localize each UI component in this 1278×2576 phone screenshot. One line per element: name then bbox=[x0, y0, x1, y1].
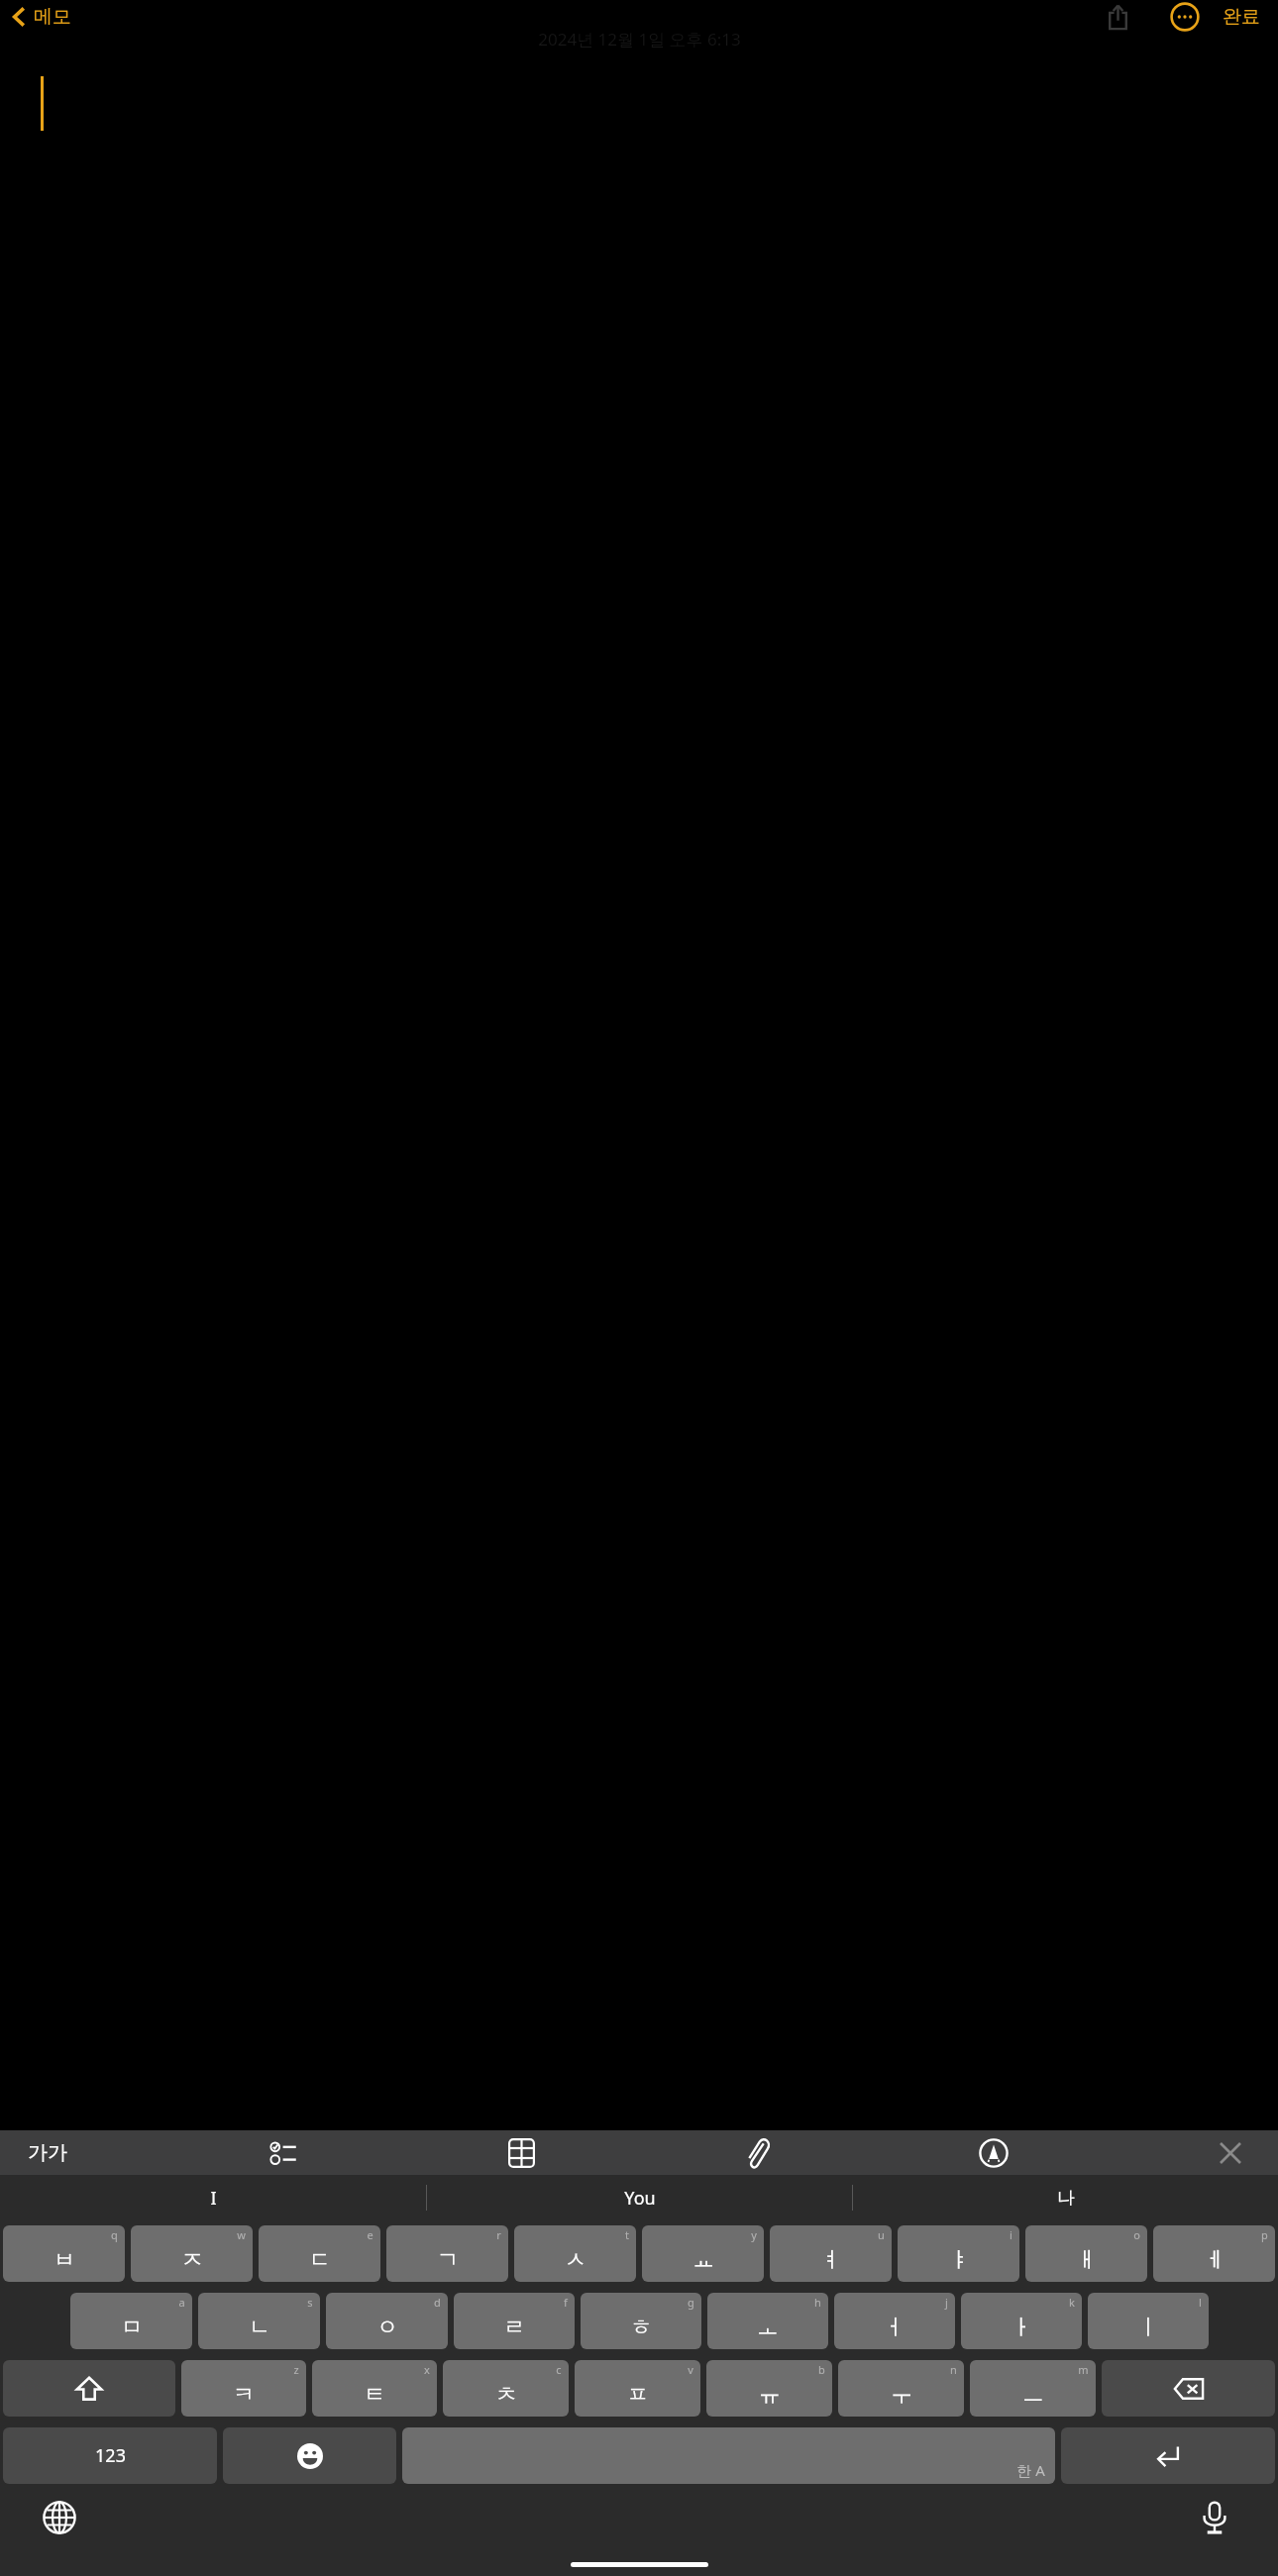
button[interactable]: Table bbox=[495, 2130, 547, 2175]
staticText: ㅋ bbox=[233, 2381, 255, 2409]
staticText: ㅇ bbox=[376, 2314, 398, 2341]
staticText: I bbox=[210, 2186, 217, 2211]
staticText: t bbox=[625, 2227, 629, 2242]
staticText: d bbox=[434, 2295, 441, 2310]
staticText: 나 bbox=[1057, 2187, 1075, 2210]
button[interactable]: h bbox=[707, 2293, 828, 2349]
staticText: p bbox=[1261, 2227, 1268, 2242]
staticText: 123 bbox=[95, 2443, 126, 2468]
button[interactable]: k bbox=[961, 2293, 1082, 2349]
staticText: f bbox=[564, 2295, 568, 2310]
staticText: ㅐ bbox=[1076, 2246, 1098, 2274]
button[interactable]: x bbox=[312, 2360, 437, 2417]
button[interactable]: 가가 bbox=[22, 2130, 73, 2175]
staticText: q bbox=[111, 2227, 118, 2242]
staticText: 완료 bbox=[1223, 5, 1260, 29]
staticText: h bbox=[814, 2295, 821, 2310]
button[interactable]: z bbox=[181, 2360, 306, 2417]
staticText: 2024년 12월 1일 오후 6:13 bbox=[538, 28, 741, 51]
staticText: b bbox=[818, 2362, 825, 2377]
staticText: v bbox=[688, 2362, 693, 2377]
button[interactable]: l bbox=[1088, 2293, 1209, 2349]
staticText: ㅜ bbox=[891, 2381, 912, 2409]
staticText: m bbox=[1078, 2362, 1089, 2377]
button[interactable]: f bbox=[454, 2293, 575, 2349]
button[interactable]: Close bbox=[1205, 2130, 1256, 2175]
button[interactable]: o bbox=[1025, 2225, 1147, 2282]
button[interactable]: Change keyboard bbox=[36, 2494, 83, 2541]
button[interactable]: i bbox=[898, 2225, 1019, 2282]
staticText: ㅣ bbox=[1137, 2314, 1159, 2341]
staticText: k bbox=[1069, 2295, 1075, 2310]
staticText: ㅓ bbox=[884, 2314, 905, 2341]
button[interactable]: Markup bbox=[968, 2130, 1019, 2175]
button[interactable]: e bbox=[259, 2225, 380, 2282]
button[interactable]: More options bbox=[1165, 0, 1205, 34]
button[interactable]: m bbox=[970, 2360, 1096, 2417]
button[interactable]: 나 bbox=[853, 2175, 1278, 2220]
button[interactable]: n bbox=[838, 2360, 964, 2417]
button[interactable]: Share bbox=[1096, 0, 1139, 34]
staticText: 가가 bbox=[28, 2140, 67, 2165]
button[interactable]: Return bbox=[1061, 2427, 1275, 2484]
staticText: ㅠ bbox=[759, 2381, 781, 2409]
button[interactable]: d bbox=[326, 2293, 448, 2349]
button[interactable]: r bbox=[386, 2225, 508, 2282]
button[interactable]: You bbox=[427, 2175, 852, 2220]
button[interactable]: v bbox=[575, 2360, 700, 2417]
staticText: ㅊ bbox=[495, 2381, 517, 2409]
staticText: ㅗ bbox=[757, 2314, 779, 2341]
staticText: i bbox=[1010, 2227, 1012, 2242]
button[interactable]: p bbox=[1153, 2225, 1275, 2282]
button[interactable]: w bbox=[131, 2225, 253, 2282]
button[interactable]: Space bbox=[402, 2427, 1055, 2484]
staticText: u bbox=[878, 2227, 885, 2242]
staticText: x bbox=[424, 2362, 430, 2377]
staticText: c bbox=[556, 2362, 562, 2377]
staticText: 한 A bbox=[1016, 2460, 1045, 2480]
staticText: ㅂ bbox=[53, 2246, 75, 2274]
staticText: ㅏ bbox=[1011, 2314, 1032, 2341]
button[interactable]: b bbox=[706, 2360, 832, 2417]
staticText: w bbox=[237, 2227, 246, 2242]
staticText: ㅌ bbox=[364, 2381, 385, 2409]
staticText: ㅑ bbox=[948, 2246, 970, 2274]
button[interactable]: 123 bbox=[3, 2427, 217, 2484]
button[interactable]: j bbox=[834, 2293, 955, 2349]
button[interactable]: c bbox=[443, 2360, 569, 2417]
staticText: l bbox=[1199, 2295, 1202, 2310]
button[interactable]: Dictation bbox=[1191, 2494, 1238, 2541]
staticText: n bbox=[950, 2362, 957, 2377]
staticText: ㄱ bbox=[437, 2246, 459, 2274]
button[interactable]: Backspace bbox=[1102, 2360, 1275, 2417]
button[interactable]: 완료 bbox=[1219, 1, 1264, 33]
staticText: e bbox=[367, 2227, 373, 2242]
button[interactable]: Attach bbox=[731, 2130, 783, 2175]
staticText: s bbox=[307, 2295, 313, 2310]
button[interactable]: a bbox=[70, 2293, 192, 2349]
button[interactable]: u bbox=[770, 2225, 892, 2282]
button[interactable]: 메모 bbox=[8, 4, 71, 30]
button[interactable]: q bbox=[3, 2225, 125, 2282]
staticText: ㅁ bbox=[121, 2314, 143, 2341]
staticText: ㄹ bbox=[503, 2314, 525, 2341]
button[interactable]: Emoji bbox=[223, 2427, 396, 2484]
button[interactable]: Shift bbox=[3, 2360, 175, 2417]
staticText: j bbox=[945, 2295, 948, 2310]
button[interactable]: y bbox=[642, 2225, 764, 2282]
staticText: ㅍ bbox=[627, 2381, 649, 2409]
staticText: 메모 bbox=[34, 5, 71, 29]
staticText: ㅕ bbox=[820, 2246, 842, 2274]
staticText: o bbox=[1133, 2227, 1140, 2242]
button[interactable]: t bbox=[514, 2225, 636, 2282]
staticText: ㅡ bbox=[1022, 2381, 1044, 2409]
staticText: z bbox=[293, 2362, 299, 2377]
staticText: ㅈ bbox=[181, 2246, 203, 2274]
button[interactable]: s bbox=[198, 2293, 320, 2349]
staticText: ㅅ bbox=[565, 2246, 586, 2274]
button[interactable]: I bbox=[0, 2175, 426, 2220]
staticText: r bbox=[496, 2227, 501, 2242]
button[interactable]: Checklist bbox=[259, 2130, 310, 2175]
staticText: ㅔ bbox=[1204, 2246, 1225, 2274]
button[interactable]: g bbox=[581, 2293, 701, 2349]
